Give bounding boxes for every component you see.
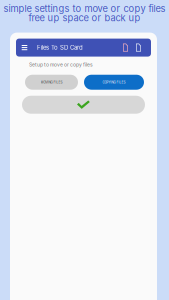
staticText: simple settings to move or copy files [3, 3, 165, 14]
staticText: COPYING FILES [102, 80, 125, 84]
staticText: MOVING FILES [40, 80, 62, 84]
staticText: free up space or back up [28, 12, 140, 24]
button[interactable]: Menu [18, 39, 31, 57]
button[interactable]: MOVING FILES [25, 75, 78, 90]
staticText: Setup to move or copy files [29, 62, 93, 68]
button[interactable] [10, 96, 157, 114]
button[interactable]: COPYING FILES [84, 75, 144, 90]
button[interactable]: Move files [119, 39, 132, 57]
staticText: Files To SD Card [37, 44, 83, 51]
button[interactable]: Copy files [132, 39, 145, 57]
